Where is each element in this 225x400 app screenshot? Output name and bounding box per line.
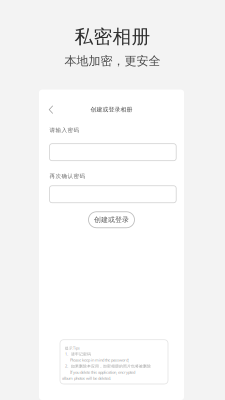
staticText: 本地加密，更安全 bbox=[64, 53, 160, 69]
staticText: 创建或登录 bbox=[94, 215, 129, 224]
staticText: 创建或登录相册 bbox=[90, 106, 132, 113]
staticText: 2、如果删除本应用，加密相册的照片也将被删除 bbox=[65, 363, 151, 369]
staticText: 1、请牢记密码 bbox=[65, 351, 91, 357]
staticText: 私密相册 bbox=[74, 25, 150, 48]
staticText: Please keep in mind the password; bbox=[70, 357, 129, 363]
button[interactable]: Back bbox=[44, 103, 58, 117]
button[interactable]: 创建或登录 bbox=[88, 212, 134, 228]
staticText: 提示Tips bbox=[65, 346, 80, 351]
staticText: 再次确认密码 bbox=[49, 173, 85, 180]
staticText: 请输入密码 bbox=[49, 127, 79, 134]
staticText: album photos will be deleted. bbox=[62, 376, 111, 381]
staticText: If you delete this application, encrypte… bbox=[70, 369, 135, 375]
